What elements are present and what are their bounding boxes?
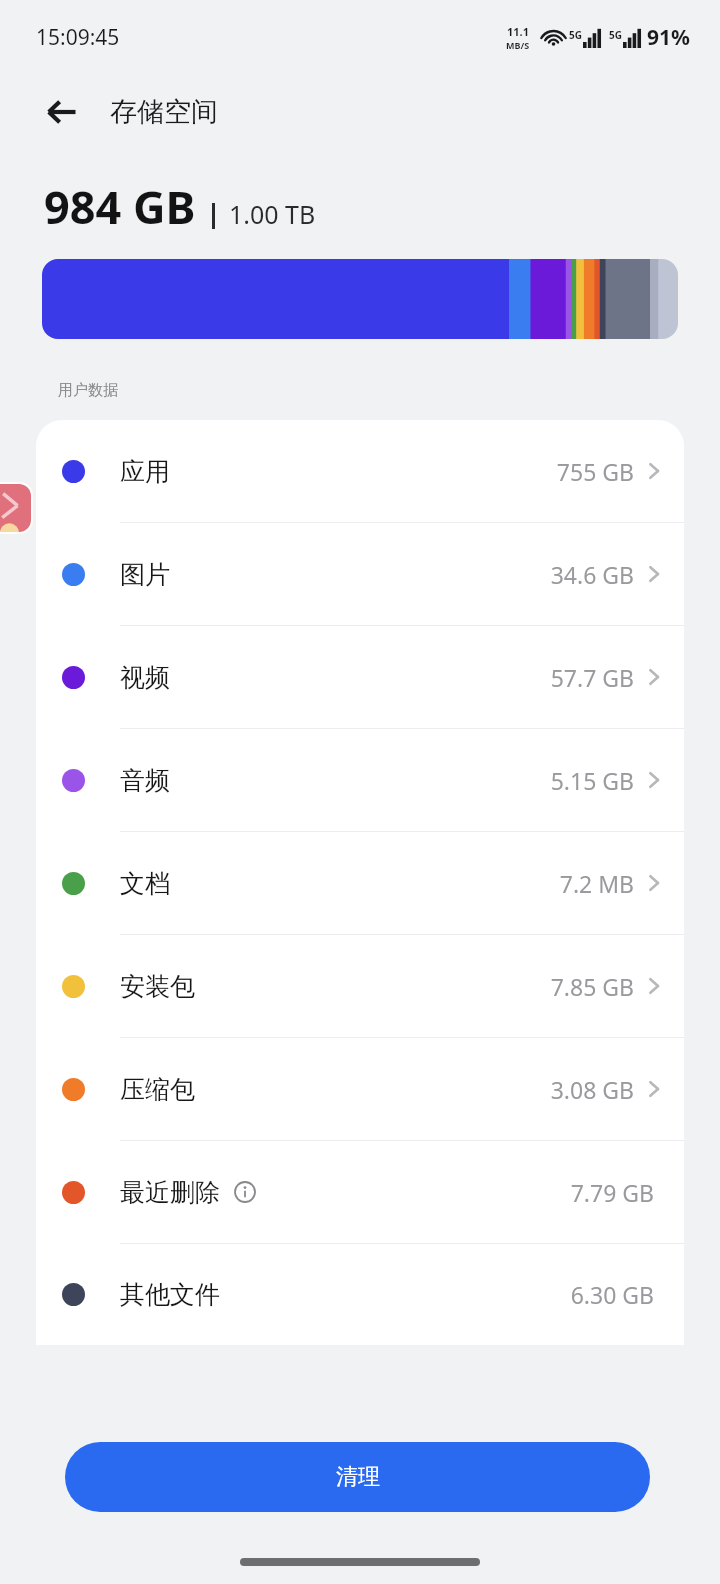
- button[interactable]: 视频: [36, 626, 684, 728]
- button[interactable]: 其他文件: [36, 1244, 684, 1345]
- staticText: 音频: [120, 765, 170, 796]
- staticText: 7.2 MB: [559, 868, 634, 899]
- staticText: 984 GB: [44, 176, 196, 237]
- staticText: 用户数据: [58, 381, 118, 400]
- staticText: 视频: [120, 662, 170, 693]
- button[interactable]: 安装包: [36, 935, 684, 1037]
- button[interactable]: 文档: [36, 832, 684, 934]
- staticText: 11.1: [507, 24, 529, 39]
- staticText: 755 GB: [556, 456, 634, 487]
- staticText: 其他文件: [120, 1279, 220, 1310]
- staticText: 文档: [120, 868, 170, 899]
- staticText: 91%: [647, 23, 690, 52]
- button[interactable]: Back: [36, 86, 88, 138]
- staticText: 34.6 GB: [550, 559, 634, 590]
- staticText: 应用: [120, 456, 170, 487]
- staticText: 1.00 TB: [229, 197, 316, 231]
- staticText: 7.85 GB: [550, 971, 634, 1002]
- staticText: 5.15 GB: [550, 765, 634, 796]
- button[interactable]: 图片: [36, 523, 684, 625]
- staticText: 5G: [569, 28, 582, 42]
- button[interactable]: 最近删除: [36, 1141, 684, 1243]
- button[interactable]: 应用: [36, 420, 684, 522]
- staticText: 6.30 GB: [570, 1279, 654, 1310]
- staticText: 安装包: [120, 971, 195, 1002]
- staticText: 压缩包: [120, 1074, 195, 1105]
- staticText: 15:09:45: [36, 23, 120, 52]
- staticText: 图片: [120, 559, 170, 590]
- button[interactable]: 压缩包: [36, 1038, 684, 1140]
- staticText: 57.7 GB: [550, 662, 634, 693]
- staticText: 最近删除: [120, 1177, 220, 1208]
- staticText: 存储空间: [110, 95, 218, 129]
- other: Floating app: [0, 484, 31, 532]
- button[interactable]: 音频: [36, 729, 684, 831]
- staticText: 7.79 GB: [570, 1177, 654, 1208]
- staticText: MB/S: [506, 39, 530, 51]
- staticText: 清理: [336, 1463, 380, 1491]
- staticText: 3.08 GB: [550, 1074, 634, 1105]
- button[interactable]: 清理: [65, 1442, 650, 1512]
- staticText: 5G: [609, 28, 622, 42]
